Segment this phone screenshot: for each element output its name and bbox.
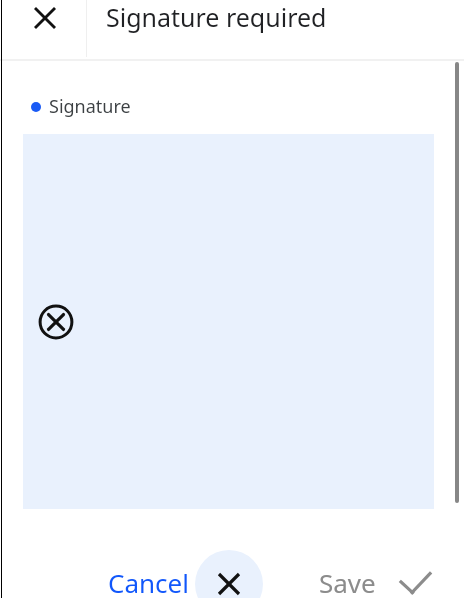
- button[interactable]: Clear signature: [38, 304, 74, 340]
- staticText: Save: [319, 565, 376, 598]
- button[interactable]: Save: [307, 556, 387, 598]
- staticText: Signature: [49, 94, 131, 119]
- button[interactable]: Cancel: [96, 556, 200, 598]
- staticText: Cancel: [108, 565, 189, 598]
- button[interactable]: Clear: [195, 550, 263, 598]
- button[interactable]: Close: [0, 0, 86, 58]
- staticText: Signature required: [106, 0, 327, 34]
- button[interactable]: Save: [394, 566, 436, 598]
